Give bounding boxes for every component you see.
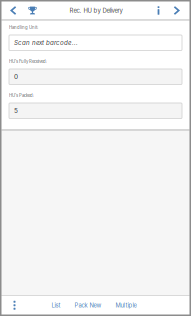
staticText: Multiple <box>115 302 136 309</box>
staticText: 0 <box>14 73 18 81</box>
button[interactable]: List <box>44 296 67 314</box>
button[interactable]: Awards <box>22 1 42 19</box>
button[interactable]: Pack New <box>67 296 108 314</box>
button[interactable]: 0 <box>9 69 182 84</box>
button[interactable]: More actions <box>3 296 25 314</box>
staticText: Scan next barcode... <box>14 39 78 46</box>
button[interactable]: Information <box>149 1 167 19</box>
staticText: Pack New <box>74 302 101 309</box>
staticText: HU's Packed: <box>9 93 34 98</box>
button[interactable]: 5 <box>9 103 182 118</box>
staticText: List <box>51 302 60 309</box>
button[interactable]: Scan next barcode... <box>9 35 182 50</box>
staticText: Handling Unit: <box>9 25 38 30</box>
button[interactable]: Forward <box>167 1 185 19</box>
staticText: Rec. HU by Delivery <box>69 7 122 14</box>
button[interactable]: Multiple <box>108 296 143 314</box>
staticText: HU's Fully Received: <box>9 59 47 64</box>
button[interactable]: Back <box>4 1 22 19</box>
staticText: 5 <box>14 107 18 115</box>
